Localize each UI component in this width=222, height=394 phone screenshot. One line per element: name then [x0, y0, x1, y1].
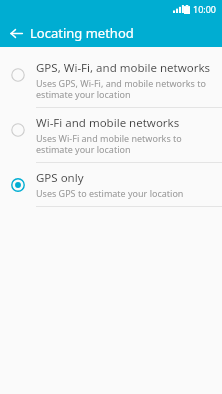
button[interactable]: Back — [6, 23, 26, 43]
button[interactable]: GPS, Wi-Fi, and mobile networks — [0, 53, 222, 107]
staticText: Uses GPS to estimate your location — [36, 187, 184, 199]
button[interactable]: Wi-Fi and mobile networks — [0, 108, 222, 162]
button[interactable]: GPS only — [0, 163, 222, 206]
staticText: GPS, Wi-Fi, and mobile networks — [36, 60, 211, 76]
staticText: Locating method — [30, 24, 134, 42]
staticText: GPS only — [36, 170, 84, 186]
staticText: Uses GPS, Wi-Fi, and mobile networks to … — [36, 77, 212, 100]
staticText: Uses Wi-Fi and mobile networks to estima… — [36, 132, 212, 155]
staticText: Wi-Fi and mobile networks — [36, 115, 180, 131]
staticText: 10:00 — [193, 3, 217, 15]
